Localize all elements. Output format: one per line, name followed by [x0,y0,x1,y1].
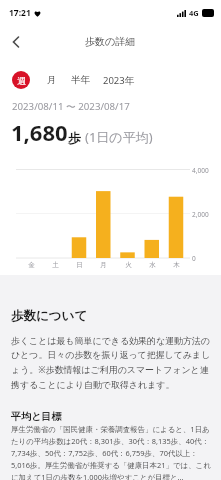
staticText: 歩数について [11,308,88,324]
staticText: 月 [47,74,57,86]
staticText: 1,680 [11,117,68,147]
staticText: 火 [125,261,132,269]
staticText: 月 [100,261,107,269]
staticText: 2023年 [103,74,135,87]
staticText: 土 [52,261,59,269]
staticText: 2,000 [192,210,209,219]
staticText: 4G [189,8,199,18]
staticText: 金 [28,261,35,269]
staticText: 半年 [71,74,90,86]
staticText: 週 [17,75,26,86]
staticText: 日 [76,261,83,269]
button[interactable]: 半年 [68,70,93,90]
staticText: (1日の平均) [85,128,153,146]
button[interactable]: 月 [44,70,60,90]
staticText: 歩 [68,130,81,146]
staticText: 4,000 [192,166,209,175]
staticText: 厚生労働省の「国民健康・栄養調査報告」によると、1日あたりの平均歩数は20代：8… [11,424,211,480]
staticText: 2023/08/11 〜 2023/08/17 [12,100,130,113]
staticText: 歩くことは最も簡単にできる効果的な運動方法のひとつ。日々の歩数を振り返って把握し… [11,335,211,391]
staticText: 平均と目標 [11,410,62,423]
staticText: 17:21 [9,7,31,19]
staticText: 木 [173,261,180,269]
staticText: 0 [192,254,196,263]
button[interactable]: 週 [12,71,30,89]
staticText: 水 [149,261,156,269]
staticText: 歩数の詳細 [85,35,136,48]
button[interactable]: Back [0,26,31,57]
button[interactable]: 2023年 [100,70,138,91]
